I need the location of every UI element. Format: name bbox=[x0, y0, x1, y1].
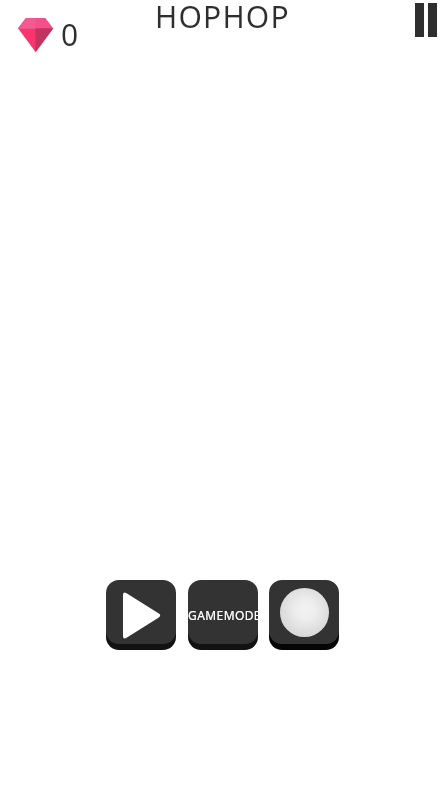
button[interactable]: Play bbox=[106, 580, 176, 644]
button[interactable]: Pause bbox=[415, 3, 437, 37]
staticText: HOPHOP bbox=[155, 0, 290, 37]
button[interactable]: 0 bbox=[18, 14, 79, 55]
staticText: GAMEMODE bbox=[188, 607, 258, 623]
staticText: 0 bbox=[61, 14, 79, 55]
button[interactable]: Ball skin bbox=[269, 580, 339, 644]
button[interactable]: Gamemode bbox=[188, 580, 258, 644]
